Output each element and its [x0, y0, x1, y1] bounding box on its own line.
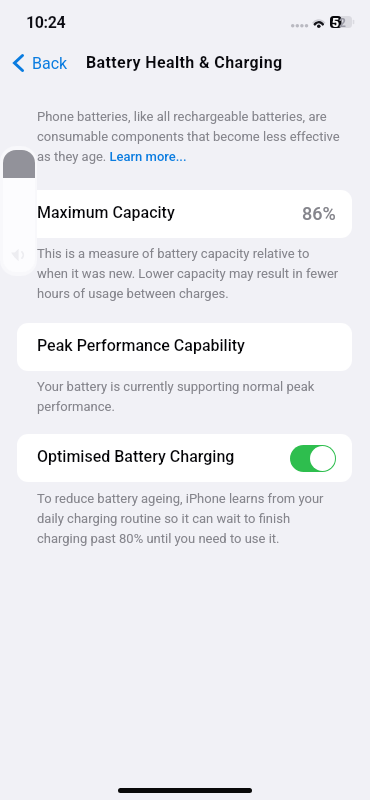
staticText: Peak Performance Capability: [37, 336, 245, 355]
button[interactable]: Back: [5, 41, 77, 85]
staticText: Back: [32, 54, 68, 73]
button[interactable]: Optimised Battery Charging toggle: [290, 445, 336, 472]
staticText: 2: [339, 16, 346, 30]
staticText: Maximum Capacity: [37, 203, 175, 222]
staticText: Battery Health & Charging: [86, 53, 283, 72]
staticText: 5: [332, 16, 339, 30]
button[interactable]: Volume: [3, 150, 35, 272]
other: Wi-Fi: [311, 15, 327, 29]
button[interactable]: Optimised Battery Charging: [17, 434, 352, 482]
button[interactable]: Maximum Capacity: [17, 190, 352, 238]
staticText: This is a measure of battery capacity re…: [37, 246, 342, 301]
staticText: To reduce battery ageing, iPhone learns …: [37, 491, 342, 546]
staticText: 10:24: [26, 13, 66, 32]
staticText: Optimised Battery Charging: [37, 447, 235, 466]
button[interactable]: Peak Performance Capability: [17, 323, 352, 371]
staticText: 86%: [302, 203, 336, 224]
staticText: Your battery is currently supporting nor…: [37, 379, 342, 414]
staticText: Phone batteries, like all rechargeable b…: [37, 109, 342, 164]
other: Battery 52 percent: [330, 15, 354, 29]
